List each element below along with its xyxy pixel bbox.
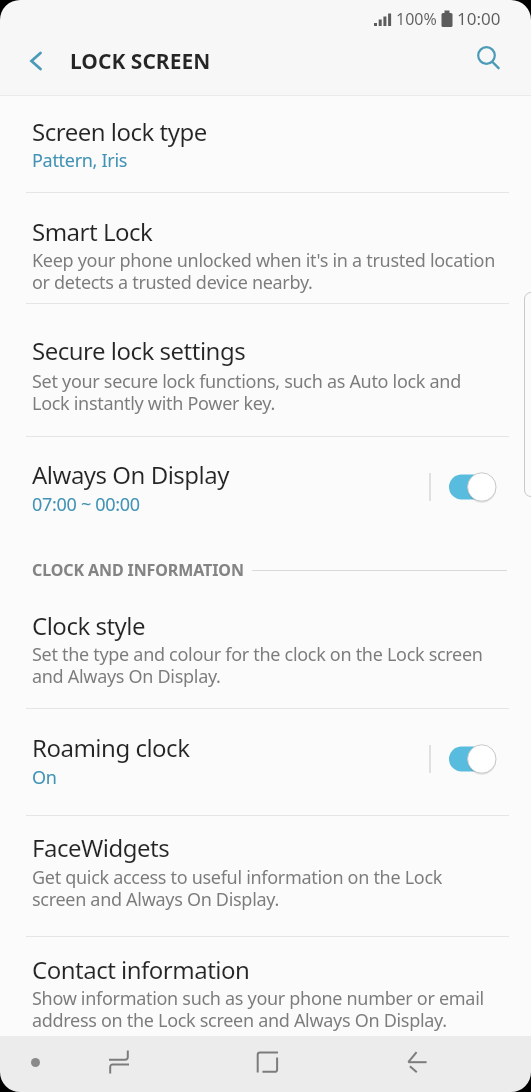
button[interactable] — [0, 192, 531, 303]
button[interactable] — [95, 1036, 143, 1084]
button[interactable] — [467, 37, 511, 81]
button[interactable] — [240, 1036, 288, 1084]
button[interactable] — [0, 815, 531, 936]
button[interactable] — [0, 436, 531, 570]
staticText: Screen lock type — [32, 115, 207, 147]
button[interactable] — [0, 582, 531, 708]
staticText: FaceWidgets — [32, 831, 170, 863]
staticText: Smart Lock — [32, 215, 153, 247]
staticText: Show information such as your phone numb… — [32, 986, 484, 1011]
button[interactable] — [0, 96, 531, 192]
button[interactable] — [0, 708, 531, 815]
button[interactable] — [16, 41, 56, 81]
button[interactable] — [0, 303, 531, 436]
staticText: Secure lock settings — [32, 334, 246, 366]
staticText: Set the type and colour for the clock on… — [32, 642, 483, 667]
staticText: screen and Always On Display. — [32, 887, 279, 912]
staticText: Keep your phone unlocked when it's in a … — [32, 248, 495, 273]
staticText: 07:00 ~ 00:00 — [32, 492, 140, 517]
staticText: Always On Display — [32, 458, 230, 490]
staticText: Clock style — [32, 609, 146, 641]
staticText: Get quick access to useful information o… — [32, 865, 443, 890]
button[interactable] — [24, 1051, 48, 1075]
staticText: Contact information — [32, 953, 250, 985]
staticText: 100% — [396, 8, 437, 30]
staticText: LOCK SCREEN — [70, 47, 211, 76]
button[interactable] — [447, 743, 501, 775]
button[interactable] — [393, 1036, 441, 1084]
staticText: and Always On Display. — [32, 664, 221, 689]
staticText: On — [32, 765, 57, 790]
staticText: or detects a trusted device nearby. — [32, 270, 313, 295]
staticText: CLOCK AND INFORMATION — [32, 559, 244, 581]
staticText: Lock instantly with Power key. — [32, 391, 275, 416]
staticText: address on the Lock screen and Always On… — [32, 1008, 447, 1033]
staticText: Roaming clock — [32, 731, 190, 763]
button[interactable] — [0, 936, 531, 1036]
staticText: Set your secure lock functions, such as … — [32, 369, 461, 394]
staticText: Pattern, Iris — [32, 148, 128, 173]
staticText: 10:00 — [457, 7, 501, 30]
button[interactable] — [447, 471, 501, 503]
